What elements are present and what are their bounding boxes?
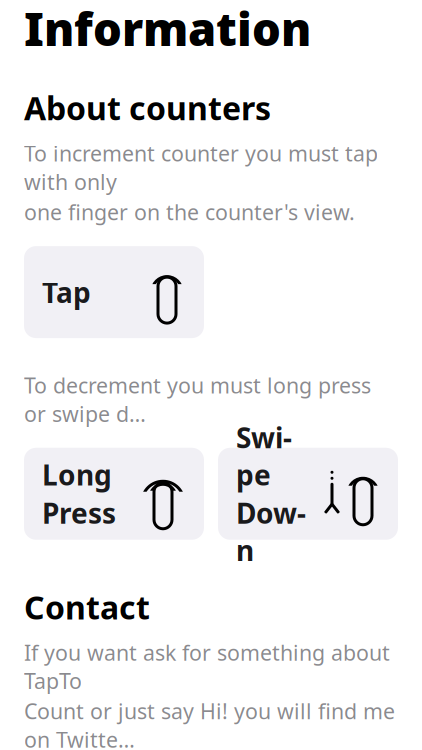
- button[interactable]: Tap: [24, 246, 204, 338]
- staticText: Swipe: [236, 419, 292, 493]
- staticText: Press: [42, 494, 116, 531]
- staticText: To decrement you must long press or swip…: [24, 371, 371, 428]
- button[interactable]: Long: [24, 448, 204, 540]
- button[interactable]: Swipe: [218, 448, 398, 540]
- staticText: About counters: [24, 87, 271, 129]
- staticText: If you want ask for something about TapT…: [24, 638, 390, 695]
- staticText: To increment counter you must tap with o…: [24, 139, 378, 196]
- staticText: one finger on the counter's view.: [24, 198, 355, 226]
- staticText: Count or just say Hi! you will find me o…: [24, 697, 395, 750]
- staticText: Long: [42, 456, 112, 493]
- staticText: Tap: [42, 273, 91, 311]
- staticText: Contact: [24, 586, 150, 628]
- staticText: Information: [24, 0, 311, 59]
- staticText: Down: [236, 494, 306, 569]
